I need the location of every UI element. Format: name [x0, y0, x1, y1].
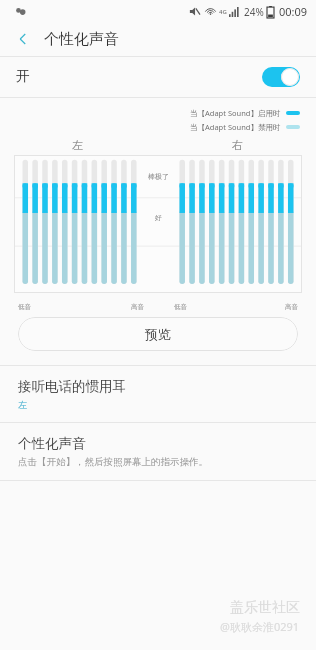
staticText: 点击【开始】，然后按照屏幕上的指示操作。 — [18, 456, 208, 468]
staticText: 接听电话的惯用耳 — [18, 378, 126, 395]
button[interactable]: 开 — [0, 57, 316, 97]
staticText: 4G — [219, 8, 227, 16]
staticText: 00:09 — [279, 4, 308, 19]
staticText: 当【Adapt Sound】启用时 — [190, 108, 281, 118]
staticText: 好 — [155, 213, 162, 222]
staticText: 高音 — [131, 303, 144, 311]
staticText: 开 — [16, 68, 30, 86]
staticText: 当【Adapt Sound】禁用时 — [190, 122, 281, 132]
staticText: 盖乐世社区 — [230, 599, 300, 617]
staticText: @耿耿余淮0291 — [220, 619, 300, 634]
staticText: 24% — [244, 5, 264, 19]
staticText: 个性化声音 — [18, 435, 86, 452]
staticText: 右 — [232, 138, 243, 152]
staticText: 左 — [72, 138, 83, 152]
staticText: 高音 — [285, 303, 298, 311]
button[interactable]: 预览 — [18, 317, 298, 351]
staticText: 个性化声音 — [44, 30, 119, 49]
staticText: 低音 — [18, 303, 31, 311]
button[interactable]: 个性化声音 — [0, 423, 316, 480]
staticText: 棒极了 — [148, 172, 169, 181]
staticText: 预览 — [145, 326, 171, 342]
staticText: 左 — [18, 399, 27, 410]
staticText: 低音 — [174, 303, 187, 311]
button[interactable]: 接听电话的惯用耳 — [0, 366, 316, 422]
button[interactable]: Back — [8, 24, 38, 54]
